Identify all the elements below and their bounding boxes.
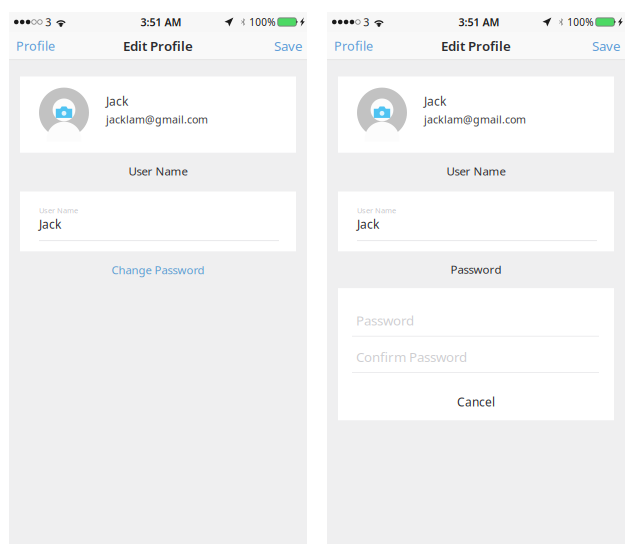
staticText: Jack xyxy=(424,93,446,109)
staticText: Save xyxy=(274,37,303,55)
staticText: jacklam@gmail.com xyxy=(424,112,526,126)
staticText: 3:51 AM xyxy=(458,15,499,29)
staticText: 3 xyxy=(45,15,51,29)
staticText: Profile xyxy=(334,37,373,54)
staticText: Password xyxy=(356,311,414,329)
button[interactable]: Jack xyxy=(20,76,296,153)
staticText: Cancel xyxy=(457,394,495,410)
staticText: jacklam@gmail.com xyxy=(106,112,208,126)
staticText: Confirm Password xyxy=(356,348,467,366)
staticText: Profile xyxy=(16,37,55,54)
button[interactable]: Change Password xyxy=(101,262,214,278)
staticText: User Name xyxy=(446,163,505,179)
staticText: Change Password xyxy=(111,262,204,278)
staticText: 3 xyxy=(363,15,369,29)
staticText: 100% xyxy=(567,15,593,29)
button[interactable]: Jack xyxy=(338,76,614,153)
staticText: Password xyxy=(450,261,501,277)
button[interactable]: Profile xyxy=(9,32,62,59)
staticText: Save xyxy=(592,37,621,55)
staticText: Edit Profile xyxy=(441,37,511,55)
button[interactable]: Profile xyxy=(327,32,380,59)
staticText: Edit Profile xyxy=(123,37,193,55)
button[interactable]: Save xyxy=(268,32,307,60)
staticText: 3:51 AM xyxy=(140,15,181,29)
staticText: User Name xyxy=(357,205,396,215)
button[interactable]: Cancel xyxy=(338,394,614,410)
staticText: Jack xyxy=(357,216,379,232)
button[interactable]: Save xyxy=(586,32,625,60)
staticText: Jack xyxy=(39,216,61,232)
staticText: Jack xyxy=(106,93,128,109)
staticText: 100% xyxy=(249,15,275,29)
staticText: User Name xyxy=(128,163,187,179)
staticText: User Name xyxy=(39,205,78,215)
